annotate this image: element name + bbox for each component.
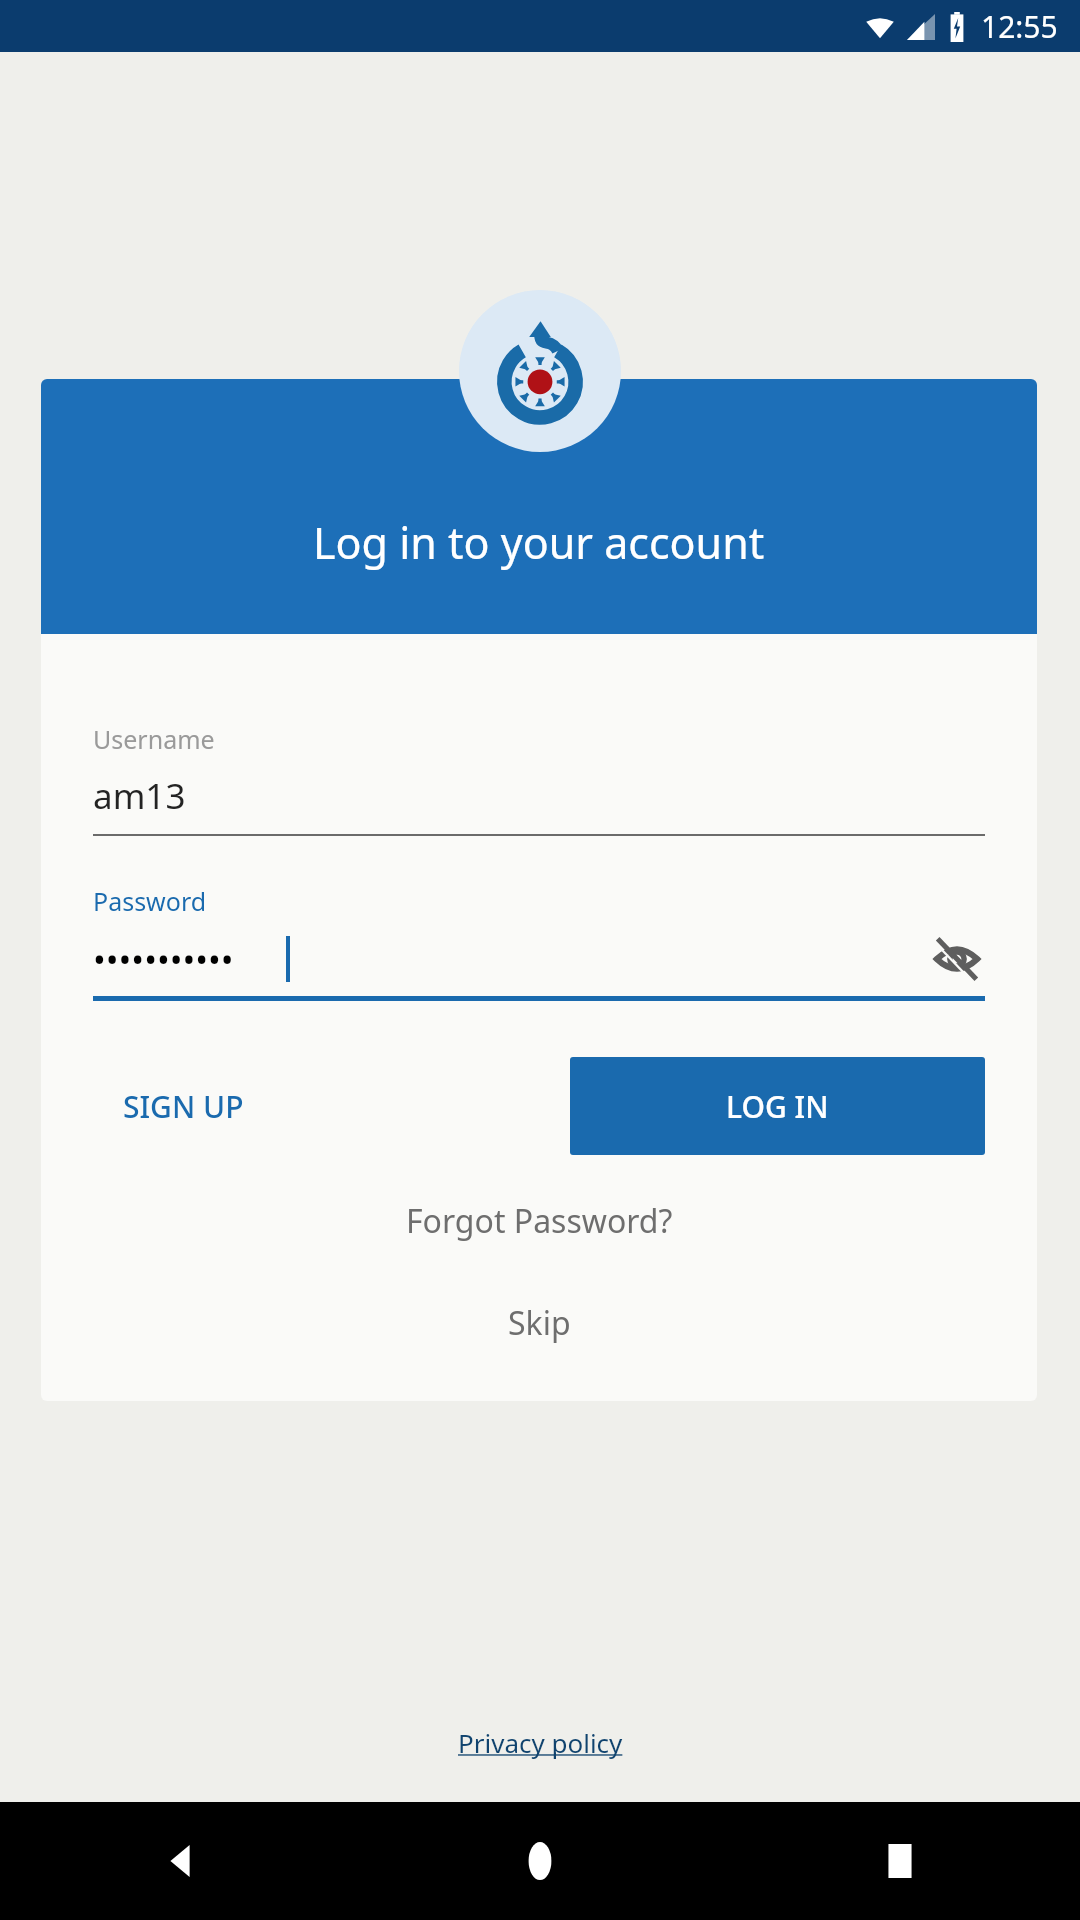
staticText: Privacy policy [458, 1725, 623, 1760]
staticText: 12:55 [981, 6, 1058, 47]
staticText: Skip [508, 1301, 571, 1345]
staticText: ••••••••••• [93, 936, 234, 982]
button[interactable]: SIGN UP [93, 1066, 274, 1147]
button[interactable]: Recent apps [720, 1802, 1080, 1920]
staticText: Forgot Password? [406, 1199, 673, 1243]
button[interactable]: Hide password [929, 936, 985, 982]
staticText: Username [93, 722, 215, 756]
button[interactable]: Home [360, 1802, 720, 1920]
button[interactable]: Skip [488, 1293, 591, 1353]
button[interactable]: Forgot Password? [386, 1191, 693, 1251]
staticText: LOG IN [726, 1086, 829, 1127]
button[interactable]: LOG IN [570, 1057, 985, 1155]
staticText: SIGN UP [123, 1086, 244, 1127]
staticText: Password [93, 884, 207, 918]
staticText: am13 [93, 772, 186, 820]
button[interactable]: Back [0, 1802, 360, 1920]
button[interactable]: Username [93, 722, 985, 836]
staticText: Log in to your account [313, 513, 765, 572]
button[interactable]: Privacy policy [448, 1721, 633, 1764]
button[interactable]: Password [93, 884, 985, 1001]
